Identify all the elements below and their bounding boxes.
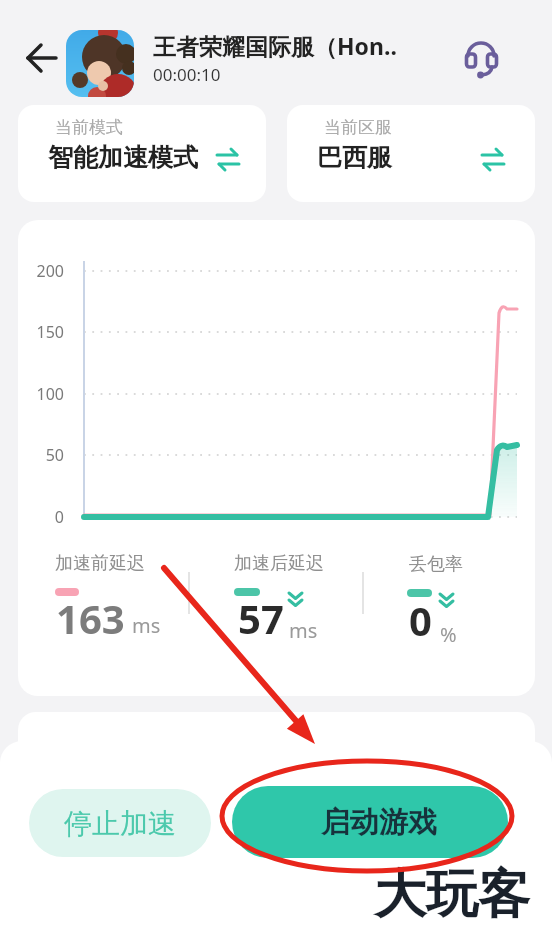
staticText: 100: [18, 383, 64, 405]
staticText: 加速前延迟: [55, 552, 145, 575]
staticText: 丢包率: [409, 553, 463, 576]
staticText: 智能加速模式: [48, 142, 198, 173]
staticText: 0: [409, 593, 432, 647]
staticText: 加速后延迟: [234, 552, 324, 575]
staticText: 163: [56, 591, 125, 645]
staticText: 50: [18, 444, 64, 466]
staticText: ms: [132, 612, 161, 639]
staticText: 57: [238, 591, 284, 645]
button[interactable]: [20, 38, 64, 82]
staticText: ms: [289, 617, 318, 644]
button[interactable]: 停止加速: [29, 789, 211, 857]
staticText: 当前模式: [55, 117, 123, 138]
staticText: 200: [18, 260, 64, 282]
staticText: %: [440, 621, 457, 648]
staticText: 00:00:10: [153, 63, 221, 86]
staticText: 王者荣耀国际服（Hon..: [153, 30, 397, 61]
staticText: 巴西服: [317, 142, 392, 173]
staticText: 0: [18, 506, 64, 528]
staticText: 当前区服: [324, 117, 392, 138]
staticText: 启动游戏: [321, 804, 437, 841]
staticText: 大玩客: [374, 862, 530, 928]
staticText: 停止加速: [64, 806, 176, 841]
button[interactable]: 当前模式: [18, 105, 266, 202]
button[interactable]: 当前区服: [287, 105, 535, 202]
staticText: 150: [18, 321, 64, 343]
button[interactable]: [462, 36, 502, 76]
button[interactable]: 启动游戏: [232, 786, 508, 858]
